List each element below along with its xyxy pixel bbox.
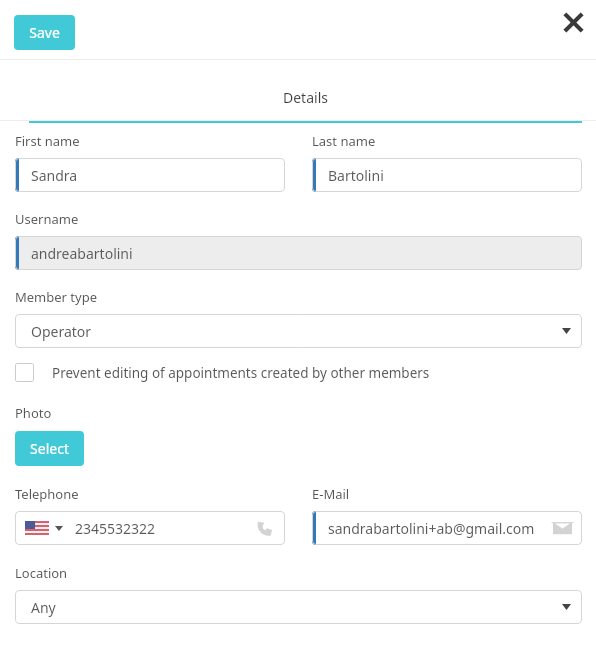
- button[interactable]: Operator: [15, 314, 582, 348]
- button[interactable]: Save: [14, 15, 75, 50]
- staticText: 2345532322: [75, 519, 156, 538]
- staticText: Details: [283, 88, 328, 107]
- staticText: Last name: [312, 132, 376, 150]
- staticText: E-Mail: [312, 485, 350, 503]
- button[interactable]: andreabartolini: [15, 236, 582, 270]
- staticText: Select: [30, 439, 69, 458]
- button[interactable]: Bartolini: [312, 158, 582, 192]
- staticText: Prevent editing of appointments created …: [52, 364, 430, 382]
- staticText: Username: [15, 210, 79, 228]
- button[interactable]: Sandra: [15, 158, 285, 192]
- staticText: sandrabartolini+ab@gmail.com: [328, 519, 535, 538]
- button[interactable]: sandrabartolini+ab@gmail.com: [312, 511, 582, 545]
- button[interactable]: Select: [15, 431, 84, 466]
- staticText: Save: [29, 23, 60, 42]
- button[interactable]: Any: [15, 590, 582, 624]
- staticText: Telephone: [15, 485, 79, 503]
- button[interactable]: Details: [15, 88, 596, 123]
- staticText: Bartolini: [328, 166, 384, 185]
- staticText: Operator: [31, 322, 92, 341]
- button[interactable]: Prevent editing of appointments created …: [15, 363, 430, 382]
- button[interactable]: 2345532322: [15, 511, 285, 545]
- staticText: Photo: [15, 404, 52, 422]
- staticText: Any: [31, 598, 56, 617]
- staticText: Sandra: [31, 166, 78, 185]
- button[interactable]: Close: [556, 5, 590, 39]
- staticText: andreabartolini: [31, 244, 133, 263]
- staticText: Location: [15, 564, 68, 582]
- staticText: Member type: [15, 288, 98, 306]
- staticText: First name: [15, 132, 80, 150]
